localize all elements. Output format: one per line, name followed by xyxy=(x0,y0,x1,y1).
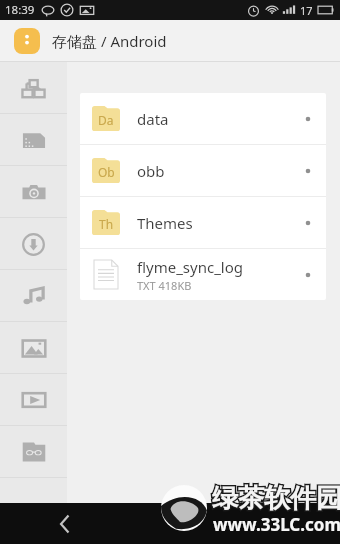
button[interactable]: Videos xyxy=(0,374,67,426)
staticText: 17 xyxy=(300,3,313,18)
staticText: 18:39 xyxy=(5,2,35,18)
button[interactable]: Documents xyxy=(0,114,67,166)
staticText: Themes xyxy=(137,213,193,233)
staticText: data xyxy=(137,109,169,129)
button[interactable]: Pictures xyxy=(0,322,67,374)
button[interactable]: More options xyxy=(294,157,322,185)
button[interactable]: flyme_sync_log xyxy=(80,249,326,300)
staticText: 存储盘 / Android xyxy=(52,31,167,51)
staticText: TXT 418KB xyxy=(137,278,192,293)
button[interactable]: More options xyxy=(294,209,322,237)
staticText: flyme_sync_log xyxy=(137,257,243,277)
button[interactable]: More options xyxy=(294,261,322,289)
button[interactable]: Ob xyxy=(80,145,326,196)
button[interactable]: Camera xyxy=(0,166,67,218)
staticText: Da xyxy=(98,112,114,128)
button[interactable]: Music xyxy=(0,270,67,322)
button[interactable]: Downloads xyxy=(0,218,67,270)
staticText: www.33LC.com xyxy=(213,513,340,536)
staticText: Th xyxy=(99,216,114,232)
staticText: 绿茶软件园 xyxy=(212,482,340,515)
button[interactable]: Th xyxy=(80,197,326,248)
staticText: 绿茶软件园 xyxy=(212,482,340,515)
button[interactable]: Back xyxy=(45,504,85,544)
staticText: Ob xyxy=(98,164,115,180)
button[interactable]: Da xyxy=(80,93,326,144)
staticText: obb xyxy=(137,161,165,181)
button[interactable]: Archive xyxy=(0,426,67,478)
button[interactable]: Apps xyxy=(0,62,67,114)
button[interactable]: Storage xyxy=(14,28,40,54)
button[interactable]: More options xyxy=(294,105,322,133)
